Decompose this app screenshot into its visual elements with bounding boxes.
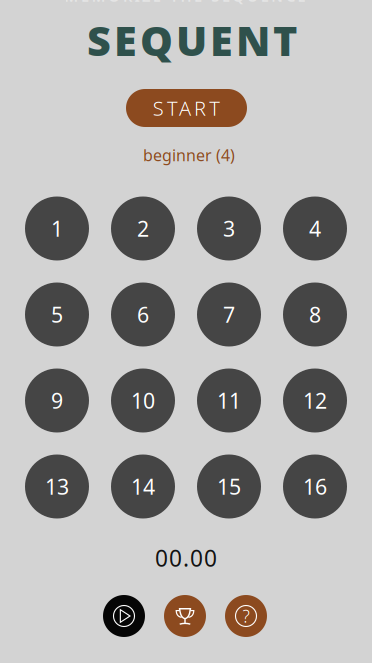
staticText: 3 bbox=[223, 214, 235, 243]
button[interactable]: 5 bbox=[25, 282, 89, 346]
button[interactable]: START bbox=[126, 89, 247, 127]
button[interactable]: 13 bbox=[25, 454, 89, 518]
button[interactable]: 2 bbox=[111, 196, 175, 260]
staticText: 8 bbox=[309, 300, 321, 329]
staticText: 12 bbox=[303, 386, 327, 415]
staticText: 6 bbox=[137, 300, 149, 329]
button[interactable]: 7 bbox=[197, 282, 261, 346]
staticText: ? bbox=[242, 604, 249, 627]
button[interactable]: 8 bbox=[283, 282, 347, 346]
button[interactable]: Play bbox=[103, 595, 145, 637]
staticText: START bbox=[153, 95, 220, 121]
button[interactable]: 4 bbox=[283, 196, 347, 260]
staticText: SEQUENT bbox=[87, 13, 297, 67]
button[interactable]: 14 bbox=[111, 454, 175, 518]
staticText: 2 bbox=[137, 214, 149, 243]
button[interactable]: 15 bbox=[197, 454, 261, 518]
staticText: 00.00 bbox=[155, 543, 217, 573]
button[interactable]: 16 bbox=[283, 454, 347, 518]
staticText: beginner (4) bbox=[143, 144, 235, 166]
staticText: MEMORIZE THE SEQUENCE bbox=[64, 0, 305, 6]
staticText: 14 bbox=[131, 472, 155, 501]
staticText: 9 bbox=[51, 386, 63, 415]
staticText: 15 bbox=[217, 472, 241, 501]
button[interactable]: 6 bbox=[111, 282, 175, 346]
staticText: 16 bbox=[303, 472, 327, 501]
button[interactable]: 12 bbox=[283, 368, 347, 432]
button[interactable]: 1 bbox=[25, 196, 89, 260]
staticText: 7 bbox=[223, 300, 235, 329]
staticText: 13 bbox=[45, 472, 69, 501]
staticText: 5 bbox=[51, 300, 63, 329]
button[interactable]: 3 bbox=[197, 196, 261, 260]
button[interactable]: 9 bbox=[25, 368, 89, 432]
button[interactable]: 11 bbox=[197, 368, 261, 432]
button[interactable]: 10 bbox=[111, 368, 175, 432]
button[interactable]: How to play bbox=[225, 595, 267, 637]
staticText: 4 bbox=[309, 214, 321, 243]
staticText: 1 bbox=[51, 214, 63, 243]
staticText: 10 bbox=[131, 386, 155, 415]
staticText: 11 bbox=[217, 386, 241, 415]
button[interactable]: Leaderboard bbox=[164, 595, 206, 637]
